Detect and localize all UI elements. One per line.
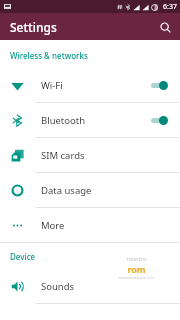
staticText: rom: [127, 263, 146, 275]
button[interactable]: SIM cards: [0, 138, 180, 172]
staticText: Wi-Fi: [41, 79, 148, 92]
staticText: Sounds: [41, 280, 172, 293]
staticText: SIM cards: [41, 149, 172, 162]
staticText: Settings: [10, 19, 57, 35]
button[interactable]: Sounds: [0, 269, 180, 303]
staticText: Device: [10, 251, 180, 262]
staticText: Data usage: [41, 184, 172, 197]
button[interactable]: Toggle: [148, 77, 172, 93]
button[interactable]: Data usage: [0, 173, 180, 207]
button[interactable]: Toggle: [148, 112, 172, 128]
staticText: More: [41, 219, 172, 232]
button[interactable]: More: [0, 208, 180, 242]
staticText: Bluetooth: [41, 114, 148, 127]
button[interactable]: Bluetooth: [0, 103, 180, 137]
staticText: Wireless & networks: [10, 50, 180, 61]
staticText: needro: [126, 255, 147, 263]
staticText: www.neodrorom.com: [118, 275, 154, 280]
button[interactable]: Search: [154, 16, 176, 38]
staticText: 6:37: [163, 2, 177, 12]
button[interactable]: Wi-Fi: [0, 68, 180, 102]
